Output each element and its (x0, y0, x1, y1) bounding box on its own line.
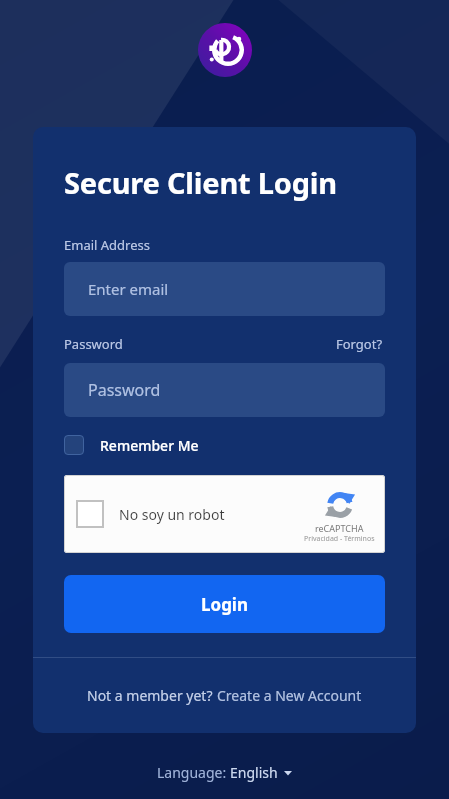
button[interactable]: Login (64, 575, 385, 633)
staticText: Remember Me (100, 436, 199, 455)
staticText: Email Address (64, 236, 150, 254)
staticText: Secure Client Login (64, 163, 337, 202)
button[interactable]: Enter email (64, 262, 385, 316)
staticText: Password (64, 335, 123, 353)
staticText: No soy un robot (119, 505, 225, 524)
staticText: reCAPTCHA (315, 522, 364, 534)
other: App logo (198, 23, 252, 77)
staticText: Password (88, 379, 161, 401)
staticText: Privacidad - Términos (304, 534, 375, 544)
staticText: Enter email (88, 279, 169, 299)
staticText: Forgot? (336, 335, 383, 353)
button[interactable]: Remember Me (64, 435, 199, 455)
staticText: Login (201, 593, 249, 616)
button[interactable]: Language: (151, 757, 298, 788)
button[interactable]: Password (64, 363, 385, 417)
staticText: Not a member yet? (87, 686, 217, 705)
button[interactable]: Forgot? (334, 333, 385, 355)
button[interactable]: No soy un robot (64, 475, 385, 553)
staticText: Language: (157, 763, 230, 782)
staticText: Create a New Account (217, 686, 362, 705)
staticText: English (230, 763, 278, 782)
button[interactable]: Not a member yet? (83, 682, 366, 709)
